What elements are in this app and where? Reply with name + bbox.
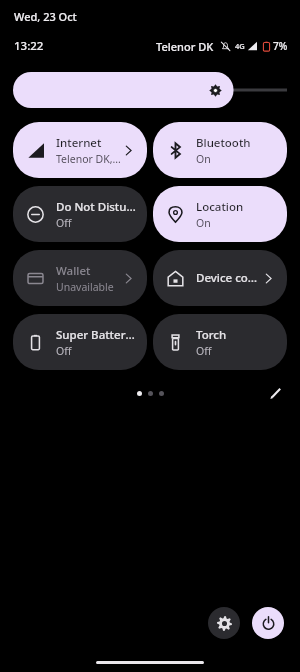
button[interactable]: Edit tiles	[266, 383, 286, 403]
button[interactable]: Wallet	[13, 250, 147, 306]
staticText: 13:22	[14, 38, 44, 54]
staticText: On	[196, 152, 211, 166]
staticText: Device contro..	[196, 270, 262, 286]
staticText: On	[196, 216, 211, 230]
staticText: 4G	[235, 41, 245, 51]
staticText: Super Battery Sa..	[56, 327, 137, 343]
button[interactable]: Torch	[153, 314, 287, 370]
button[interactable]: Location	[153, 186, 287, 242]
staticText: Wed, 23 Oct	[14, 9, 77, 24]
staticText: Torch	[196, 327, 227, 343]
button[interactable]: Power	[252, 607, 284, 639]
button[interactable]: Device contro..	[153, 250, 287, 306]
button[interactable]: Internet	[13, 122, 147, 178]
button[interactable]: Settings	[208, 607, 240, 639]
staticText: Unavailable	[56, 280, 114, 294]
staticText: Telenor DK, 4G	[56, 152, 122, 166]
button[interactable]: Do Not Disturb	[13, 186, 147, 242]
staticText: Wallet	[56, 263, 91, 279]
staticText: Off	[56, 216, 72, 230]
button[interactable]: Bluetooth	[153, 122, 287, 178]
staticText: Do Not Disturb	[56, 199, 137, 215]
staticText: Off	[56, 344, 72, 358]
staticText: Internet	[56, 135, 102, 151]
button[interactable]: Brightness	[13, 72, 287, 108]
staticText: 7%	[273, 39, 288, 53]
staticText: Bluetooth	[196, 135, 251, 151]
button[interactable]: Super Battery Sa..	[13, 314, 147, 370]
staticText: Location	[196, 199, 244, 215]
staticText: Telenor DK	[156, 39, 214, 54]
other: Silent mode	[220, 41, 231, 52]
staticText: Off	[196, 344, 212, 358]
